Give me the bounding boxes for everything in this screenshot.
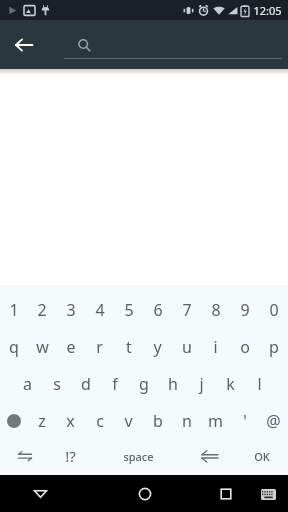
button[interactable] (64, 23, 282, 67)
button[interactable]: j (187, 365, 216, 402)
button[interactable]: x (56, 402, 85, 439)
staticText: 6 (153, 299, 163, 321)
button[interactable]: n (172, 402, 201, 439)
button[interactable]: 9 (230, 291, 259, 328)
button[interactable]: r (85, 328, 114, 365)
button[interactable]: 1 (0, 291, 28, 328)
staticText: t (126, 336, 132, 358)
button[interactable]: Back (0, 21, 48, 69)
button[interactable]: 4 (85, 291, 114, 328)
staticText: OK (254, 449, 270, 464)
button[interactable]: s (42, 365, 71, 402)
staticText: 5 (124, 299, 134, 321)
button[interactable]: i (201, 328, 230, 365)
staticText: p (269, 336, 279, 358)
staticText: 12:05 (253, 3, 282, 18)
staticText: @ (266, 410, 281, 432)
staticText: 0 (269, 299, 279, 321)
button[interactable]: Home (113, 475, 176, 512)
button[interactable]: a (13, 365, 42, 402)
button[interactable]: m (201, 402, 230, 439)
staticText: b (153, 410, 163, 432)
staticText: c (96, 410, 104, 432)
button[interactable]: l (245, 365, 274, 402)
button[interactable]: z (28, 402, 56, 439)
staticText: 9 (240, 299, 250, 321)
button[interactable]: 8 (201, 291, 230, 328)
button[interactable]: Switch keyboard (0, 439, 49, 473)
staticText: q (9, 336, 19, 358)
button[interactable]: 2 (28, 291, 56, 328)
button[interactable]: Change keyboard (252, 478, 284, 510)
staticText: g (139, 373, 149, 395)
staticText: i (213, 336, 218, 358)
staticText: 7 (182, 299, 192, 321)
staticText: o (240, 336, 250, 358)
staticText: f (112, 373, 118, 395)
button[interactable]: Back (0, 475, 81, 512)
staticText: !? (65, 446, 76, 466)
staticText: h (168, 373, 178, 395)
staticText: r (96, 336, 103, 358)
staticText: 4 (95, 299, 105, 321)
button[interactable]: g (129, 365, 158, 402)
staticText: d (81, 373, 91, 395)
button[interactable]: f (100, 365, 129, 402)
staticText: s (53, 373, 61, 395)
button[interactable]: b (143, 402, 172, 439)
staticText: n (182, 410, 192, 432)
button[interactable]: p (259, 328, 288, 365)
button[interactable]: q (0, 328, 28, 365)
button[interactable]: space (92, 439, 184, 473)
button[interactable]: e (56, 328, 85, 365)
button[interactable]: w (28, 328, 56, 365)
button[interactable]: h (158, 365, 187, 402)
staticText: a (23, 373, 32, 395)
staticText: x (66, 410, 75, 432)
button[interactable]: t (114, 328, 143, 365)
staticText: l (257, 373, 262, 395)
button[interactable]: @ (259, 402, 288, 439)
staticText: v (124, 410, 133, 432)
staticText: 8 (211, 299, 221, 321)
staticText: 1 (9, 299, 19, 321)
staticText: m (208, 410, 223, 432)
button[interactable]: 5 (114, 291, 143, 328)
button[interactable]: Recents (206, 475, 246, 512)
staticText: w (36, 336, 49, 358)
staticText: ' (243, 410, 247, 432)
staticText: z (38, 410, 46, 432)
staticText: k (226, 373, 235, 395)
button[interactable]: ' (230, 402, 259, 439)
button[interactable]: y (143, 328, 172, 365)
button[interactable]: 0 (259, 291, 288, 328)
button[interactable]: Shift (0, 402, 28, 439)
button[interactable]: u (172, 328, 201, 365)
staticText: e (66, 336, 76, 358)
button[interactable]: k (216, 365, 245, 402)
button[interactable]: Backspace (184, 439, 236, 473)
button[interactable]: d (71, 365, 100, 402)
button[interactable]: 7 (172, 291, 201, 328)
button[interactable]: v (114, 402, 143, 439)
button[interactable]: !? (49, 439, 92, 473)
button[interactable]: OK (236, 439, 288, 473)
staticText: u (182, 336, 192, 358)
staticText: y (153, 336, 162, 358)
button[interactable]: o (230, 328, 259, 365)
staticText: 2 (37, 299, 47, 321)
button[interactable]: c (85, 402, 114, 439)
button[interactable]: 6 (143, 291, 172, 328)
button[interactable]: 3 (56, 291, 85, 328)
staticText: space (123, 449, 154, 464)
staticText: j (199, 373, 204, 395)
staticText: 3 (66, 299, 76, 321)
